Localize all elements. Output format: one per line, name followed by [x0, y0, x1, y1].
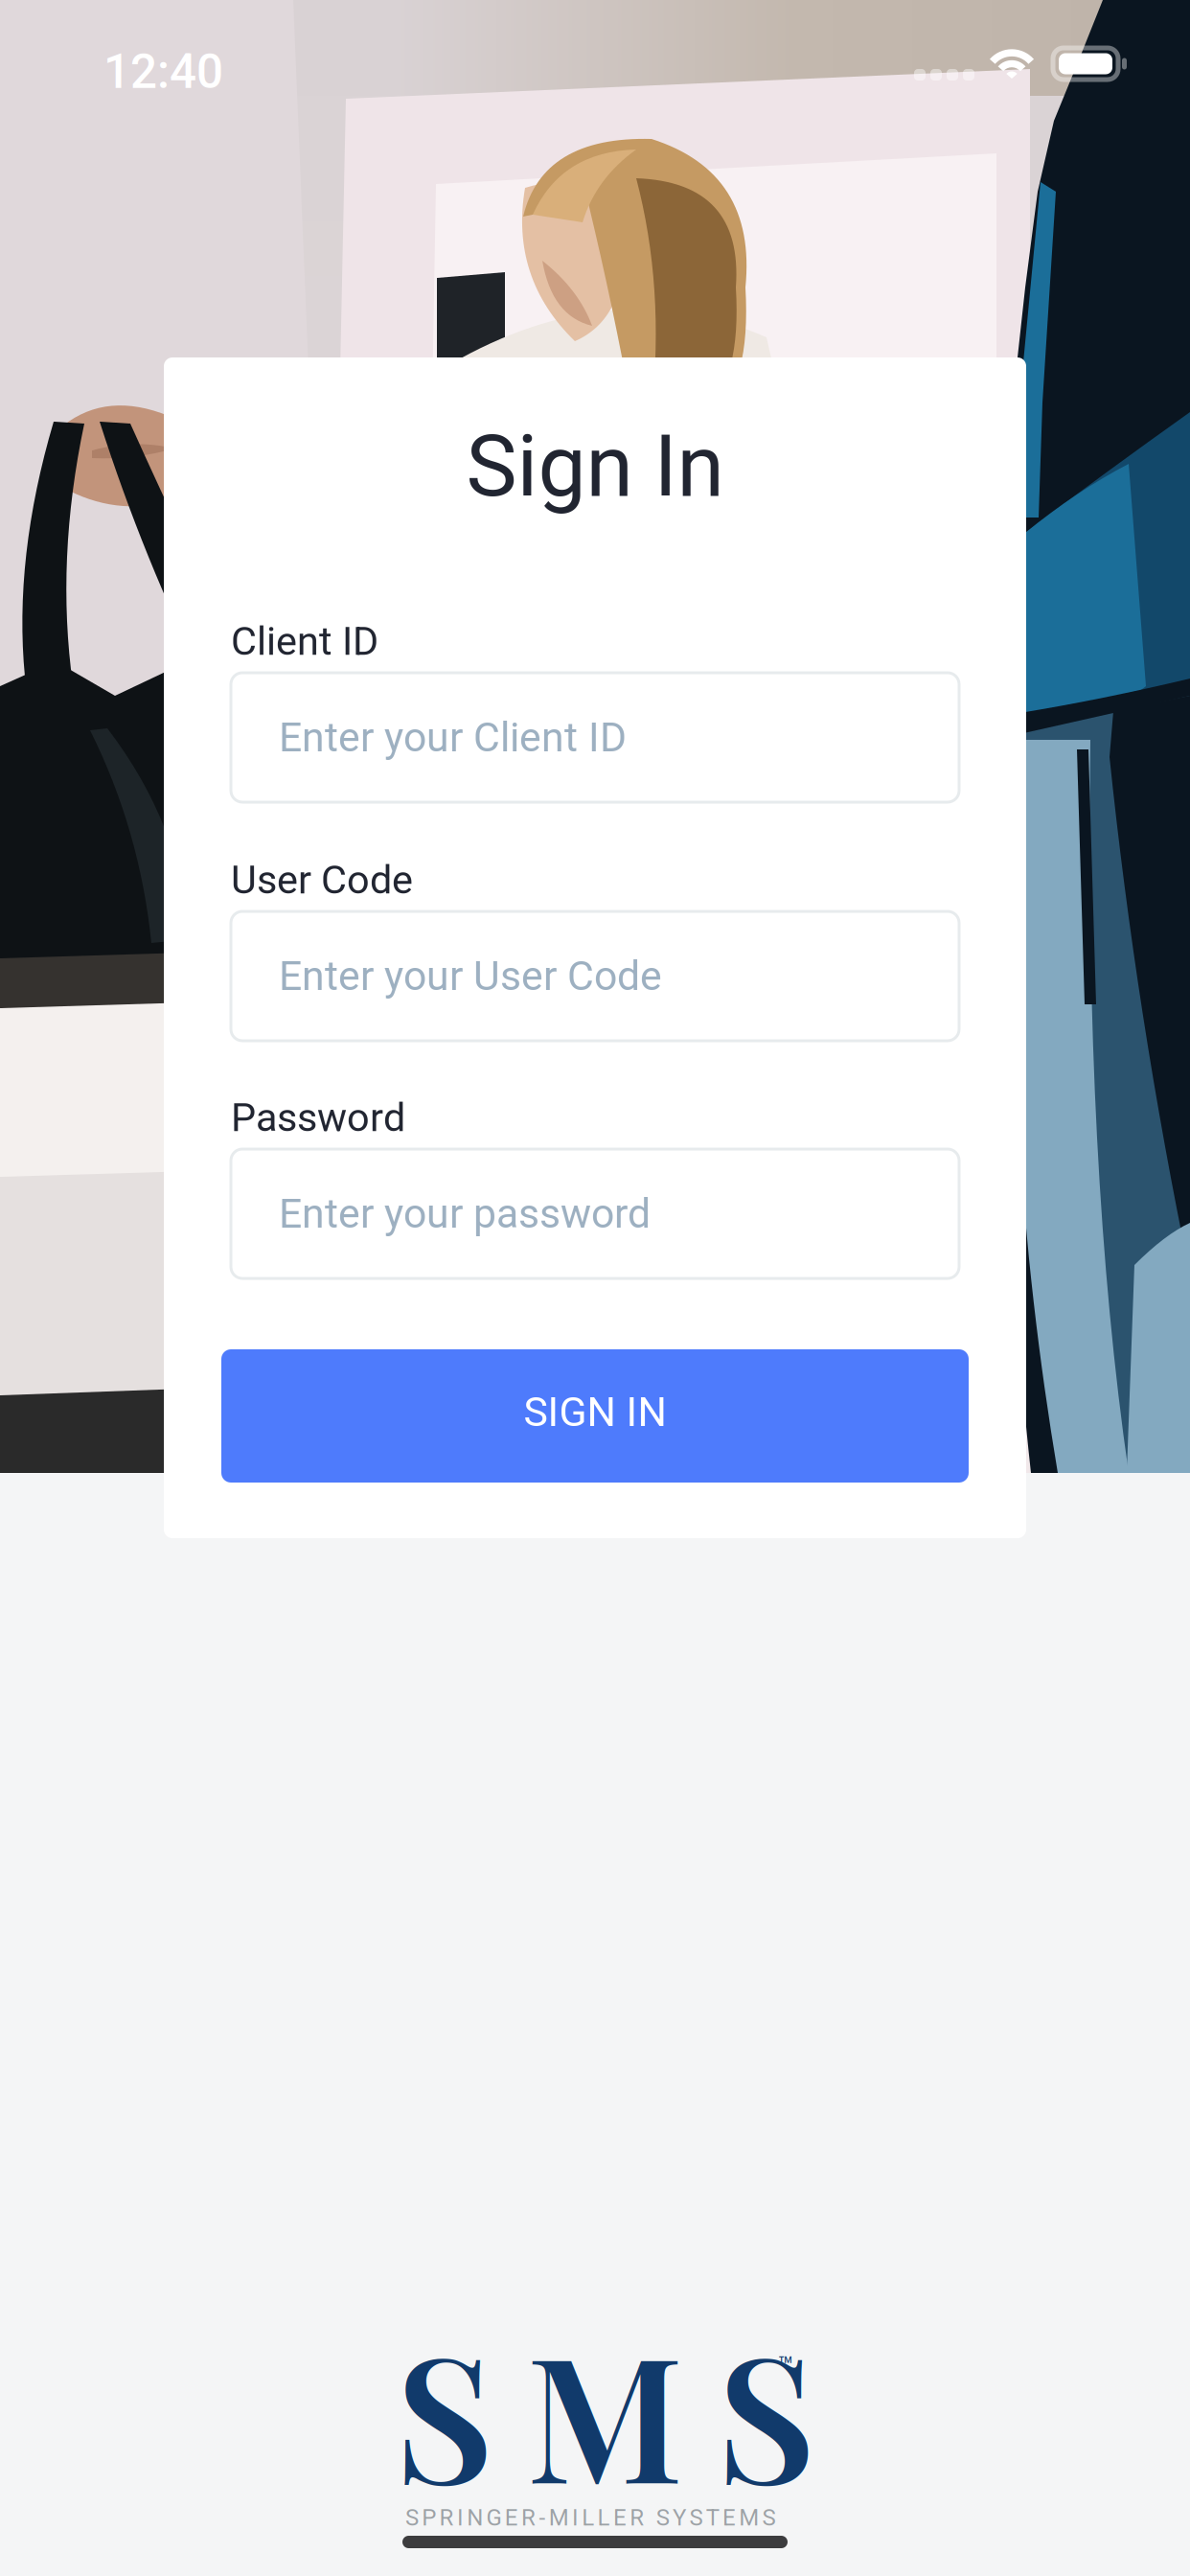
staticText: Client ID [231, 618, 378, 665]
staticText: Password [231, 1094, 405, 1141]
staticText: User Code [231, 857, 413, 903]
button[interactable]: Enter your User Code [231, 911, 959, 1041]
button[interactable]: Enter your password [231, 1149, 959, 1278]
button[interactable]: SIGN IN [221, 1349, 969, 1483]
staticText: SMS [395, 2295, 815, 2527]
staticText: ™ [778, 2351, 794, 2381]
button[interactable]: Enter your Client ID [231, 673, 959, 802]
staticText: 12:40 [103, 44, 223, 99]
staticText: Sign In [466, 416, 724, 516]
staticText: Enter your password [279, 1190, 651, 1238]
staticText: SIGN IN [524, 1388, 666, 1436]
staticText: Enter your User Code [279, 952, 662, 1000]
staticText: Enter your Client ID [279, 713, 627, 761]
staticText: SPRINGER-MILLER SYSTEMS [405, 2504, 776, 2531]
